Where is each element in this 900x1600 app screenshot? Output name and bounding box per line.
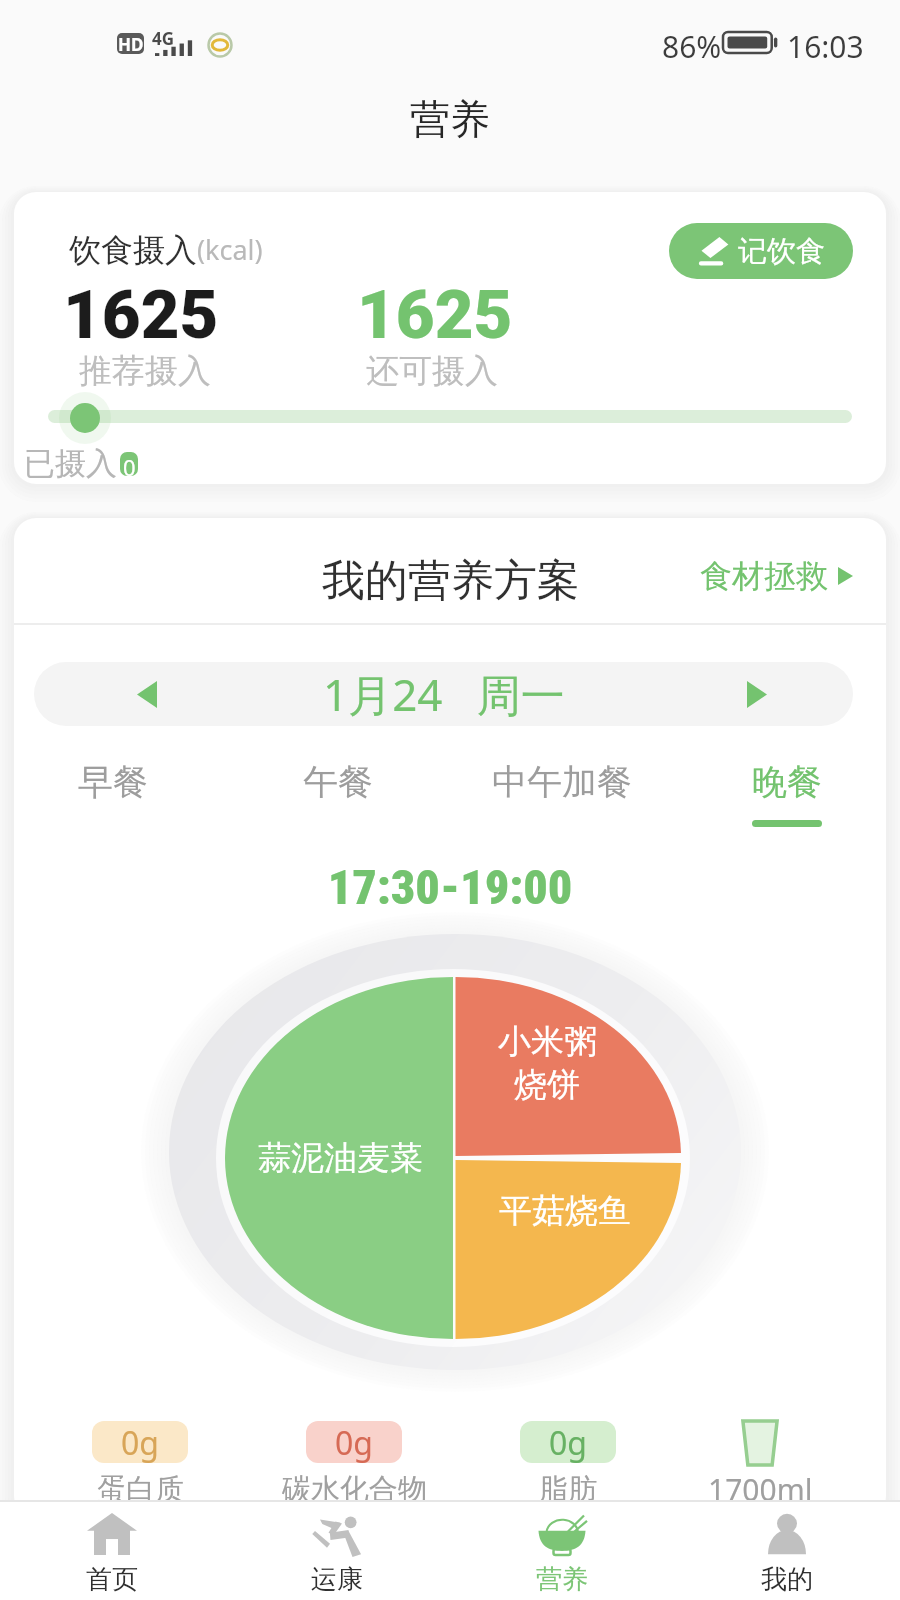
staticText: 蛋白质 [97,1471,184,1508]
staticText: 平菇烧鱼 [499,1190,631,1232]
button[interactable]: Previous day [97,662,197,726]
button[interactable]: Water intake [660,1421,860,1510]
staticText: 0 [123,452,136,476]
button[interactable]: 0g [468,1421,668,1508]
staticText: 1700ml [708,1469,813,1510]
staticText: 还可摄入 [366,350,498,392]
button[interactable]: Next day [707,662,807,726]
staticText: 推荐摄入 [79,350,211,392]
staticText: 营养 [410,94,490,144]
button[interactable]: 晚餐 [752,760,822,827]
button[interactable]: 我的 [675,1502,899,1600]
staticText: 中午加餐 [492,760,632,804]
staticText: 我的营养方案 [322,554,580,608]
button[interactable]: 午餐 [303,760,373,804]
staticText: 1625 [357,276,513,355]
staticText: 饮食摄入 [69,230,197,270]
staticText: 营养 [536,1563,588,1596]
staticText: 脂肪 [539,1471,597,1508]
staticText: 运康 [311,1563,363,1596]
staticText: 小米粥 [498,1021,597,1063]
staticText: 蒜泥油麦菜 [258,1137,423,1179]
button[interactable]: 0g [40,1421,240,1508]
staticText: 食材拯救 [700,556,828,596]
staticText: 首页 [86,1563,138,1596]
staticText: 记饮食 [738,233,825,270]
staticText: 晚餐 [752,760,822,804]
button[interactable]: 0g [254,1421,454,1508]
staticText: 16:03 [787,26,864,67]
button[interactable]: 运康 [225,1502,449,1600]
staticText: (kcal) [197,231,263,268]
staticText: 1月24 周一 [323,664,565,724]
staticText: 0g [549,1421,587,1463]
staticText: 我的 [761,1563,813,1596]
button[interactable]: 中午加餐 [492,760,632,804]
staticText: 烧饼 [514,1064,580,1106]
button[interactable]: 食材拯救 [690,550,863,602]
staticText: 1625 [63,276,219,355]
staticText: 碳水化合物 [282,1471,427,1508]
button[interactable]: 首页 [0,1502,224,1600]
staticText: 0g [121,1421,159,1463]
button[interactable]: 早餐 [78,760,148,804]
staticText: 已摄入 [24,444,117,483]
staticText: 4G [152,27,175,50]
staticText: HD [118,33,144,54]
staticText: 早餐 [78,760,148,804]
button[interactable]: 营养 [450,1502,674,1600]
staticText: 午餐 [303,760,373,804]
staticText: 86% [662,26,722,67]
staticText: 17:30-19:00 [14,859,886,915]
button[interactable]: 记饮食 [669,223,853,279]
staticText: 0g [335,1421,373,1463]
